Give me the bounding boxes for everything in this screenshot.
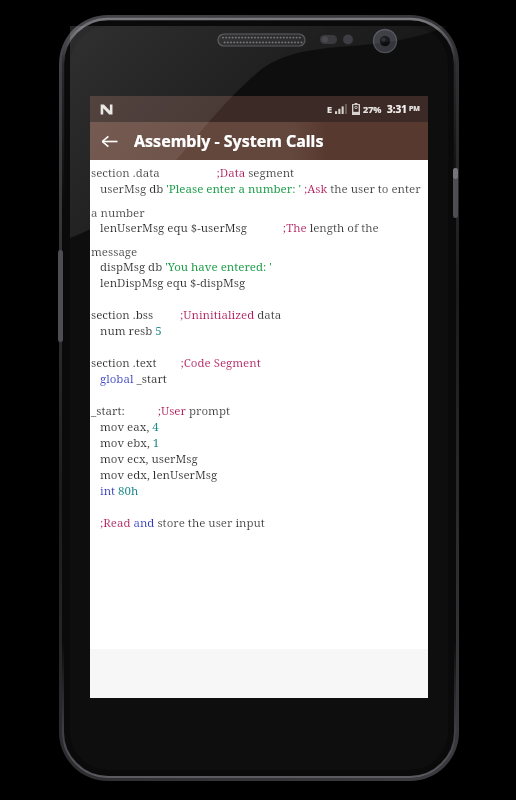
staticText: lenUserMsg equ $-userMsg ;The length of … [91, 220, 426, 259]
staticText: PM [409, 104, 420, 114]
staticText: _start: ;User prompt [91, 403, 426, 419]
staticText: mov edx, lenUserMsg [91, 467, 426, 483]
staticText: mov ebx, 1 [91, 435, 426, 451]
staticText: section .bss ;Uninitialized data [91, 307, 426, 323]
staticText: mov ecx, userMsg [91, 451, 426, 467]
staticText: E [327, 103, 333, 115]
staticText: int 80h [91, 483, 426, 499]
staticText: 27% [363, 103, 382, 115]
staticText: userMsg db 'Please enter a number: ' ;As… [91, 181, 426, 220]
staticText: ;Read and store the user input [91, 515, 426, 531]
staticText: mov eax, 4 [91, 419, 426, 435]
button[interactable]: section .data ;Data segment [90, 160, 428, 698]
staticText: section .text ;Code Segment [91, 355, 426, 371]
staticText: section .data ;Data segment [91, 165, 426, 181]
button[interactable]: Back [90, 122, 128, 160]
staticText: Assembly - System Calls [134, 130, 324, 152]
staticText: 3:31 [387, 102, 407, 116]
staticText: lenDispMsg equ $-dispMsg [91, 275, 426, 291]
staticText: global _start [91, 371, 426, 387]
staticText: num resb 5 [91, 323, 426, 339]
staticText: dispMsg db 'You have entered: ' [91, 259, 426, 275]
